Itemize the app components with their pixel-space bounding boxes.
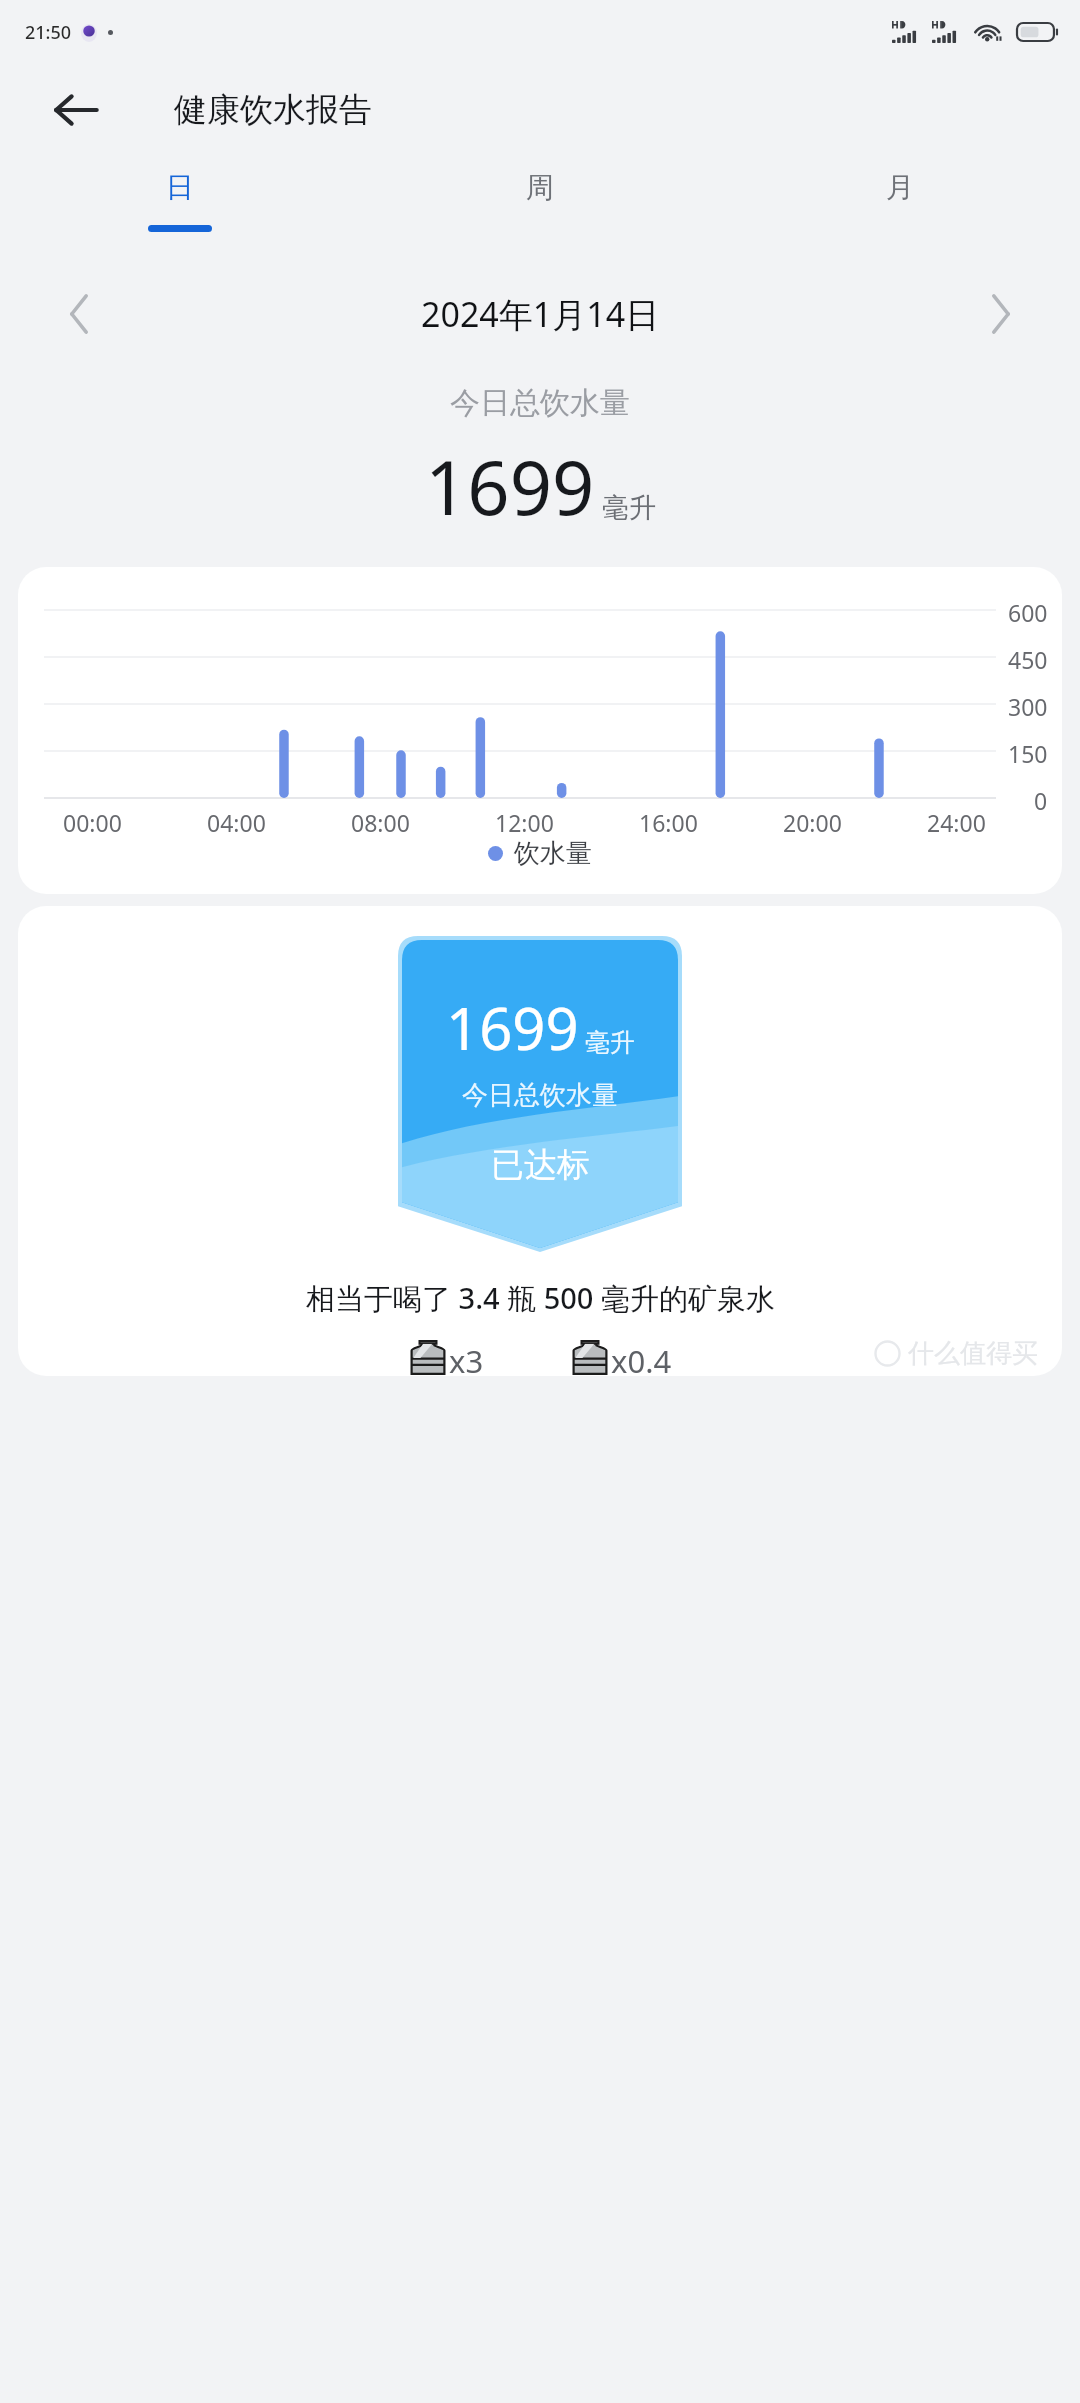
staticText: 周 bbox=[526, 170, 554, 205]
staticText: 什么值得买 bbox=[908, 1337, 1038, 1370]
button[interactable]: 1699 bbox=[18, 906, 1062, 1376]
staticText: 04:00 bbox=[207, 807, 266, 838]
staticText: 450 bbox=[1008, 644, 1048, 675]
staticText: 00:00 bbox=[63, 807, 122, 838]
staticText: 12:00 bbox=[495, 807, 554, 838]
staticText: 今日总饮水量 bbox=[450, 384, 630, 422]
button[interactable]: 月 bbox=[720, 156, 1080, 264]
staticText: 毫升 bbox=[602, 491, 656, 525]
staticText: 0 bbox=[1034, 785, 1048, 816]
staticText: x3 bbox=[449, 1340, 484, 1376]
staticText: 健康饮水报告 bbox=[174, 89, 372, 131]
staticText: 今日总饮水量 bbox=[462, 1079, 618, 1112]
button[interactable]: 600 bbox=[18, 567, 1062, 894]
button[interactable]: Next day bbox=[972, 285, 1030, 343]
staticText: x0.4 bbox=[611, 1340, 672, 1376]
staticText: 月 bbox=[886, 170, 914, 205]
button[interactable]: 周 bbox=[360, 156, 720, 264]
staticText: 日 bbox=[166, 170, 194, 205]
staticText: 已达标 bbox=[491, 1144, 590, 1186]
button[interactable]: Back bbox=[46, 80, 106, 140]
staticText: 1699 bbox=[446, 988, 579, 1067]
button[interactable]: Previous day bbox=[50, 285, 108, 343]
staticText: 08:00 bbox=[351, 807, 410, 838]
staticText: 150 bbox=[1008, 738, 1048, 769]
staticText: 16:00 bbox=[639, 807, 698, 838]
staticText: 300 bbox=[1008, 691, 1048, 722]
staticText: 600 bbox=[1008, 597, 1048, 628]
staticText: 1699 bbox=[425, 436, 595, 537]
staticText: 21:50 bbox=[25, 20, 72, 45]
staticText: 24:00 bbox=[927, 807, 986, 838]
button[interactable]: 日 bbox=[0, 156, 360, 264]
staticText: 2024年1月14日 bbox=[421, 291, 660, 337]
staticText: 相当于喝了 3.4 瓶 500 毫升的矿泉水 bbox=[306, 1278, 775, 1318]
staticText: 毫升 bbox=[585, 1027, 635, 1058]
staticText: 饮水量 bbox=[514, 837, 592, 870]
staticText: 20:00 bbox=[783, 807, 842, 838]
